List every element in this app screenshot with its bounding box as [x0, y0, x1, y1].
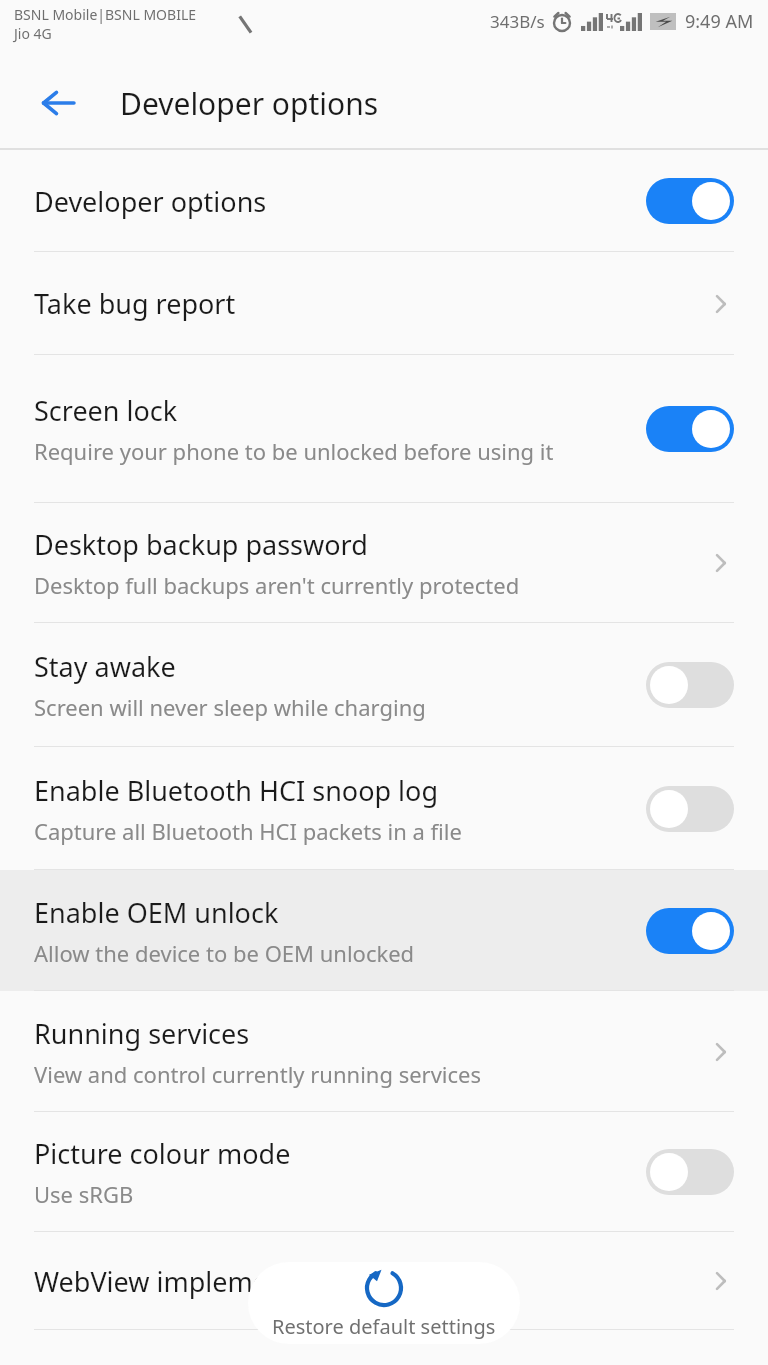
staticText: Running services [34, 1015, 250, 1052]
staticText: BSNL Mobile|BSNL MOBILE [14, 5, 197, 24]
button[interactable]: Stay awake [0, 623, 768, 747]
staticText: Desktop backup password [34, 526, 368, 563]
staticText: Require your phone to be unlocked before… [34, 436, 554, 466]
staticText: View and control currently running servi… [34, 1059, 482, 1089]
staticText: 9:49 AM [685, 9, 754, 34]
staticText: Screen lock [34, 392, 178, 429]
staticText: Screen will never sleep while charging [34, 692, 426, 722]
staticText: Take bug report [34, 285, 236, 322]
button[interactable]: Picture colour mode [0, 1112, 768, 1232]
staticText: Allow the device to be OEM unlocked [34, 938, 415, 968]
button[interactable]: Restore default settings [248, 1262, 520, 1344]
button[interactable]: Enable OEM unlock [0, 870, 768, 991]
button[interactable]: Enable Bluetooth HCI snoop log [0, 747, 768, 870]
button[interactable]: Back [26, 71, 90, 135]
staticText: Picture colour mode [34, 1135, 291, 1172]
button[interactable]: Developer options [0, 150, 768, 252]
staticText: Enable Bluetooth HCI snoop log [34, 772, 439, 809]
button[interactable]: Multiprocess WebView [0, 1330, 768, 1365]
staticText: Jio 4G [14, 24, 52, 43]
staticText: Use sRGB [34, 1179, 134, 1209]
button[interactable]: Screen lock [0, 355, 768, 503]
staticText: Developer options [34, 183, 267, 220]
button[interactable]: WebView implementation [0, 1232, 768, 1330]
staticText: WebView implementation [34, 1263, 360, 1300]
staticText: Capture all Bluetooth HCI packets in a f… [34, 816, 462, 846]
button[interactable]: Take bug report [0, 252, 768, 355]
staticText: Desktop full backups aren't currently pr… [34, 570, 520, 600]
staticText: 343B/s [490, 10, 545, 33]
staticText: Developer options [120, 83, 379, 124]
button[interactable]: Off [646, 786, 734, 832]
button[interactable]: On [646, 908, 734, 954]
staticText: Enable OEM unlock [34, 894, 279, 931]
button[interactable]: On [646, 178, 734, 224]
button[interactable]: On [646, 406, 734, 452]
button[interactable]: Off [646, 1149, 734, 1195]
staticText: Stay awake [34, 648, 176, 685]
button[interactable]: Running services [0, 991, 768, 1112]
button[interactable]: Off [646, 662, 734, 708]
button[interactable]: Desktop backup password [0, 503, 768, 623]
staticText: Restore default settings [272, 1313, 496, 1340]
